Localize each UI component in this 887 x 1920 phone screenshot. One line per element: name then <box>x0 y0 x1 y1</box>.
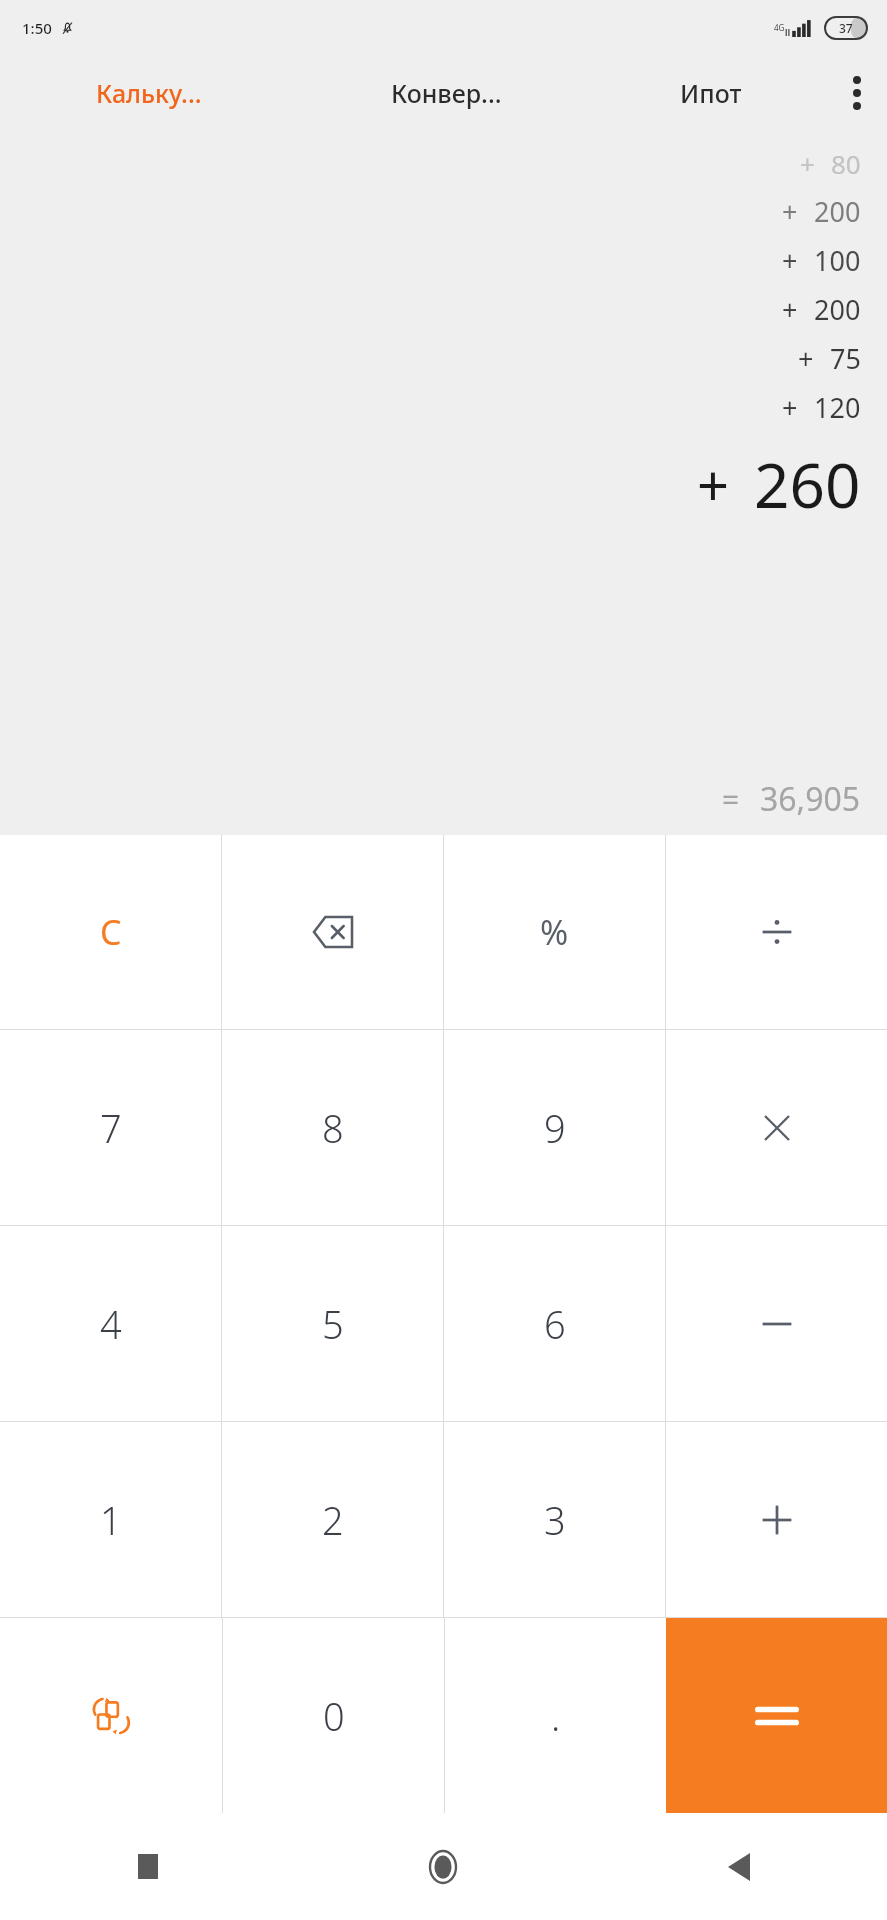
button[interactable]: 8 <box>222 1030 443 1225</box>
button[interactable]: Plus <box>666 1422 887 1617</box>
staticText: 120 <box>814 389 861 426</box>
button[interactable]: Swap <box>0 1618 222 1813</box>
button[interactable]: 2 <box>222 1422 443 1617</box>
staticText: 1 <box>100 1494 122 1546</box>
button[interactable]: Backspace <box>222 835 443 1029</box>
button[interactable]: Minus <box>666 1226 887 1421</box>
staticText: 3 <box>544 1494 566 1546</box>
button[interactable]: 5 <box>222 1226 443 1421</box>
button[interactable]: Кальку... <box>0 56 298 130</box>
button[interactable]: Equals <box>666 1618 887 1813</box>
staticText: 1:50 <box>22 18 52 38</box>
staticText: 36,905 <box>760 777 861 821</box>
button[interactable]: More options <box>827 56 887 130</box>
staticText: = <box>722 779 740 820</box>
staticText: 100 <box>814 242 861 279</box>
staticText: 4 <box>100 1298 122 1350</box>
staticText: . <box>551 1690 561 1742</box>
button[interactable]: Back <box>591 1813 887 1920</box>
staticText: 0 <box>323 1690 345 1742</box>
staticText: 7 <box>100 1102 122 1154</box>
staticText: + <box>782 389 798 426</box>
staticText: Кальку... <box>96 76 202 110</box>
staticText: 200 <box>814 291 861 328</box>
staticText: Ипот <box>680 76 742 110</box>
button[interactable]: Конвер... <box>298 56 595 130</box>
button[interactable]: Ипот <box>595 56 827 130</box>
staticText: 80 <box>831 146 861 181</box>
button[interactable]: C <box>0 835 221 1029</box>
staticText: 8 <box>322 1102 344 1154</box>
button[interactable]: 7 <box>0 1030 221 1225</box>
button[interactable]: Recent apps <box>0 1813 295 1920</box>
staticText: 37 <box>839 20 853 36</box>
staticText: 4G <box>774 22 785 33</box>
button[interactable]: Divide <box>666 835 887 1029</box>
staticText: 260 <box>754 442 861 526</box>
button[interactable]: 6 <box>444 1226 665 1421</box>
staticText: 5 <box>322 1298 344 1350</box>
staticText: + <box>782 242 798 279</box>
staticText: + <box>800 146 815 181</box>
staticText: + <box>798 340 814 377</box>
staticText: % <box>540 909 569 955</box>
staticText: 6 <box>544 1298 566 1350</box>
staticText: Конвер... <box>391 76 502 110</box>
staticText: 200 <box>814 193 861 230</box>
staticText: + <box>697 446 730 522</box>
button[interactable]: Multiply <box>666 1030 887 1225</box>
staticText: 2 <box>322 1494 344 1546</box>
staticText: C <box>100 909 122 955</box>
staticText: + <box>782 291 798 328</box>
button[interactable]: 0 <box>223 1618 444 1813</box>
button[interactable]: Home <box>295 1813 591 1920</box>
staticText: + <box>782 193 798 230</box>
staticText: 75 <box>830 340 861 377</box>
staticText: 9 <box>544 1102 566 1154</box>
button[interactable]: 1 <box>0 1422 221 1617</box>
button[interactable]: 4 <box>0 1226 221 1421</box>
button[interactable]: 3 <box>444 1422 665 1617</box>
button[interactable]: 9 <box>444 1030 665 1225</box>
button[interactable]: % <box>444 835 665 1029</box>
